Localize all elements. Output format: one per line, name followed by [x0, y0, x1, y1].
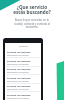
button[interactable]: Servicio de limpieza: [5, 76, 41, 85]
staticText: Servicio de limpieza: [7, 50, 31, 53]
staticText: Servicios: [19, 45, 28, 48]
staticText: Descripcion del servicio: [7, 88, 30, 91]
button[interactable]: Servicio de limpieza: [5, 84, 41, 93]
button[interactable]: Servicio de limpieza: [5, 59, 41, 68]
button[interactable]: Servicio de limpieza: [5, 67, 41, 76]
staticText: ¿Que servicio estás buscando?: [3, 4, 61, 15]
staticText: Servicio de limpieza: [7, 84, 31, 87]
button[interactable]: Servicio de limpieza: [5, 93, 41, 100]
staticText: Servicio de limpieza: [7, 93, 31, 96]
button[interactable]: Servicio de limpieza: [5, 50, 41, 59]
staticText: Servicio de limpieza: [7, 76, 31, 79]
staticText: Descripcion del servicio: [7, 71, 30, 74]
staticText: Servicio de limpieza: [7, 59, 31, 62]
staticText: Descripcion del servicio: [7, 54, 30, 57]
staticText: Descripcion del servicio: [7, 80, 30, 83]
staticText: Busca lo que necesitas en tu ciudad, con…: [11, 18, 53, 28]
staticText: Servicio de limpieza: [7, 67, 31, 70]
staticText: Descripcion del servicio: [7, 63, 30, 66]
staticText: Descripcion del servicio: [7, 97, 30, 100]
